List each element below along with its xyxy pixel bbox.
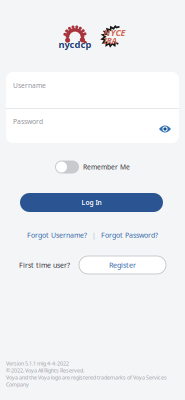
staticText: First time user? xyxy=(19,260,70,270)
staticText: IRA xyxy=(103,34,117,46)
button[interactable]: Forgot Username? xyxy=(27,230,87,240)
staticText: Version 5.1.1 mlg 4-4-2022 xyxy=(6,360,69,367)
staticText: Username xyxy=(13,81,46,90)
staticText: Register xyxy=(109,260,136,270)
staticText: Voya and the Voya logo are registered tr… xyxy=(6,374,167,381)
staticText: Remember Me xyxy=(83,162,130,172)
staticText: | xyxy=(92,230,96,240)
staticText: NYCE xyxy=(103,26,125,38)
button[interactable]: Forgot Password? xyxy=(101,230,158,240)
button[interactable]: Register xyxy=(79,256,166,274)
staticText: Company xyxy=(6,381,29,388)
staticText: © 2022, Voya All Rights Reserved. xyxy=(6,367,84,374)
staticText: nycdcp xyxy=(58,38,91,51)
staticText: Forgot Username? xyxy=(27,230,87,240)
staticText: Forgot Password? xyxy=(101,230,158,240)
staticText: Password xyxy=(13,117,43,126)
staticText: Log In xyxy=(81,198,101,207)
button[interactable]: Log In xyxy=(20,193,163,212)
button[interactable]: Remember Me xyxy=(55,160,130,174)
